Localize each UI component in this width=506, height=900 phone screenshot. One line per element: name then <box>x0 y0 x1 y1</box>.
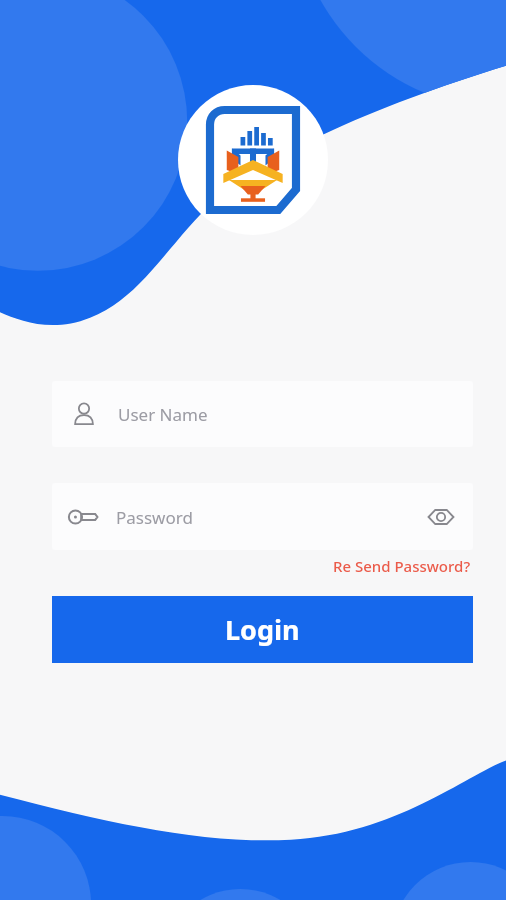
button[interactable]: Password <box>52 483 473 550</box>
button[interactable]: Re Send Password? <box>331 554 473 578</box>
button[interactable]: Show password <box>419 495 463 539</box>
button[interactable]: User Name <box>52 381 473 447</box>
staticText: Login <box>225 611 300 648</box>
staticText: Re Send Password? <box>333 556 471 576</box>
staticText: Password <box>116 506 193 529</box>
button[interactable]: Login <box>52 596 473 663</box>
staticText: User Name <box>118 403 208 426</box>
